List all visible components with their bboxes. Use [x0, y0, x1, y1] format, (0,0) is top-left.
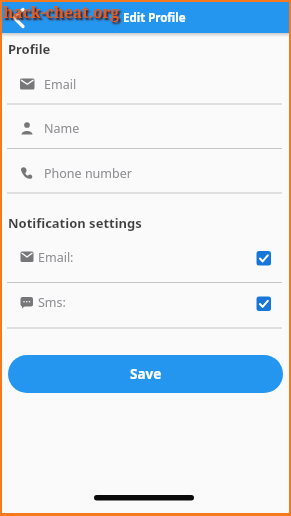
staticText: Email [44, 76, 77, 93]
staticText: hack-cheat.org [3, 1, 120, 22]
staticText: Phone number [44, 165, 132, 182]
staticText: Name [44, 120, 80, 137]
staticText: Email: [38, 249, 74, 266]
button[interactable] [2, 4, 30, 32]
button[interactable]: Email [7, 65, 283, 104]
staticText: Sms: [38, 294, 66, 311]
staticText: Edit Profile [123, 10, 186, 26]
staticText: Save [130, 365, 162, 383]
button[interactable]: Save [8, 355, 283, 393]
button[interactable]: Email: [7, 238, 283, 277]
staticText: Profile [8, 40, 51, 58]
button[interactable]: Sms: [7, 283, 283, 322]
button[interactable]: Phone number [7, 154, 283, 193]
button[interactable]: Name [7, 109, 283, 148]
staticText: Notification settings [8, 214, 142, 232]
